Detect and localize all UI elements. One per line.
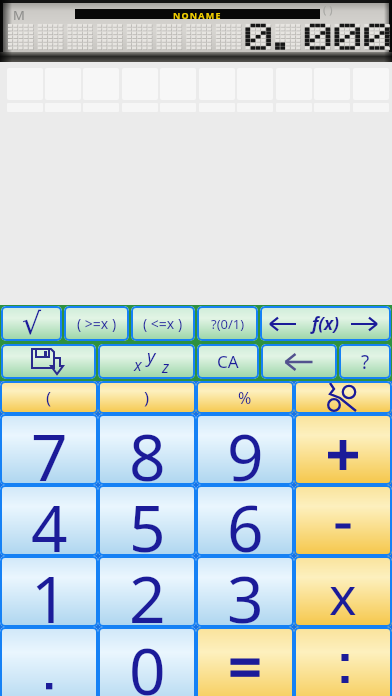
staticText: z bbox=[162, 356, 170, 378]
staticText: x bbox=[134, 354, 142, 376]
staticText: % bbox=[238, 387, 252, 409]
button[interactable]: CA bbox=[197, 344, 259, 379]
button[interactable]: x bbox=[98, 344, 195, 379]
button[interactable]: 3 bbox=[196, 556, 294, 627]
button[interactable]: √ bbox=[1, 306, 62, 341]
staticText: √ bbox=[22, 306, 42, 341]
button[interactable] bbox=[294, 414, 392, 485]
button[interactable]: 9 bbox=[196, 414, 294, 485]
staticText: ?(0/1) bbox=[211, 315, 245, 333]
staticText: 9 bbox=[227, 414, 264, 484]
staticText: 0 bbox=[129, 627, 166, 696]
staticText: ( <=x ) bbox=[143, 314, 183, 333]
button[interactable]: ? bbox=[339, 344, 391, 379]
button[interactable] bbox=[1, 344, 96, 379]
staticText: NONAME bbox=[173, 9, 222, 19]
staticText: 6 bbox=[227, 485, 264, 555]
staticText: CA bbox=[217, 350, 239, 373]
staticText: 7 bbox=[31, 414, 68, 484]
button[interactable]: f(x) bbox=[260, 306, 391, 341]
button[interactable] bbox=[294, 627, 392, 696]
staticText: ( bbox=[46, 386, 52, 409]
button[interactable]: ( <=x ) bbox=[131, 306, 195, 341]
staticText: ? bbox=[361, 349, 370, 375]
button[interactable]: ?(0/1) bbox=[197, 306, 258, 341]
button[interactable]: x bbox=[294, 556, 392, 627]
staticText: 1 bbox=[31, 556, 68, 626]
staticText: ( ) bbox=[323, 2, 333, 17]
staticText: M bbox=[13, 6, 25, 22]
button[interactable]: ( >=x ) bbox=[64, 306, 129, 341]
staticText: 4 bbox=[31, 485, 68, 555]
button[interactable]: ( bbox=[0, 381, 98, 414]
staticText: f(x) bbox=[312, 312, 339, 335]
staticText: 2 bbox=[129, 556, 166, 626]
button[interactable] bbox=[294, 381, 392, 414]
button[interactable]: % bbox=[196, 381, 294, 414]
staticText: 3 bbox=[227, 556, 264, 626]
button[interactable]: 1 bbox=[0, 556, 98, 627]
button[interactable]: 0 bbox=[98, 627, 196, 696]
button[interactable]: 4 bbox=[0, 485, 98, 556]
staticText: 8 bbox=[129, 414, 166, 484]
button[interactable]: 7 bbox=[0, 414, 98, 485]
button[interactable] bbox=[294, 485, 392, 556]
staticText: 5 bbox=[129, 485, 166, 555]
staticText: ( >=x ) bbox=[77, 314, 117, 333]
button[interactable] bbox=[261, 344, 337, 379]
button[interactable]: NONAME bbox=[75, 9, 320, 19]
staticText: x bbox=[329, 559, 357, 627]
staticText: ) bbox=[144, 386, 150, 409]
button[interactable]: 6 bbox=[196, 485, 294, 556]
button[interactable]: ) bbox=[98, 381, 196, 414]
button[interactable] bbox=[0, 627, 98, 696]
staticText: y bbox=[147, 344, 156, 369]
button[interactable]: 2 bbox=[98, 556, 196, 627]
button[interactable]: 5 bbox=[98, 485, 196, 556]
button[interactable]: 8 bbox=[98, 414, 196, 485]
button[interactable] bbox=[196, 627, 294, 696]
